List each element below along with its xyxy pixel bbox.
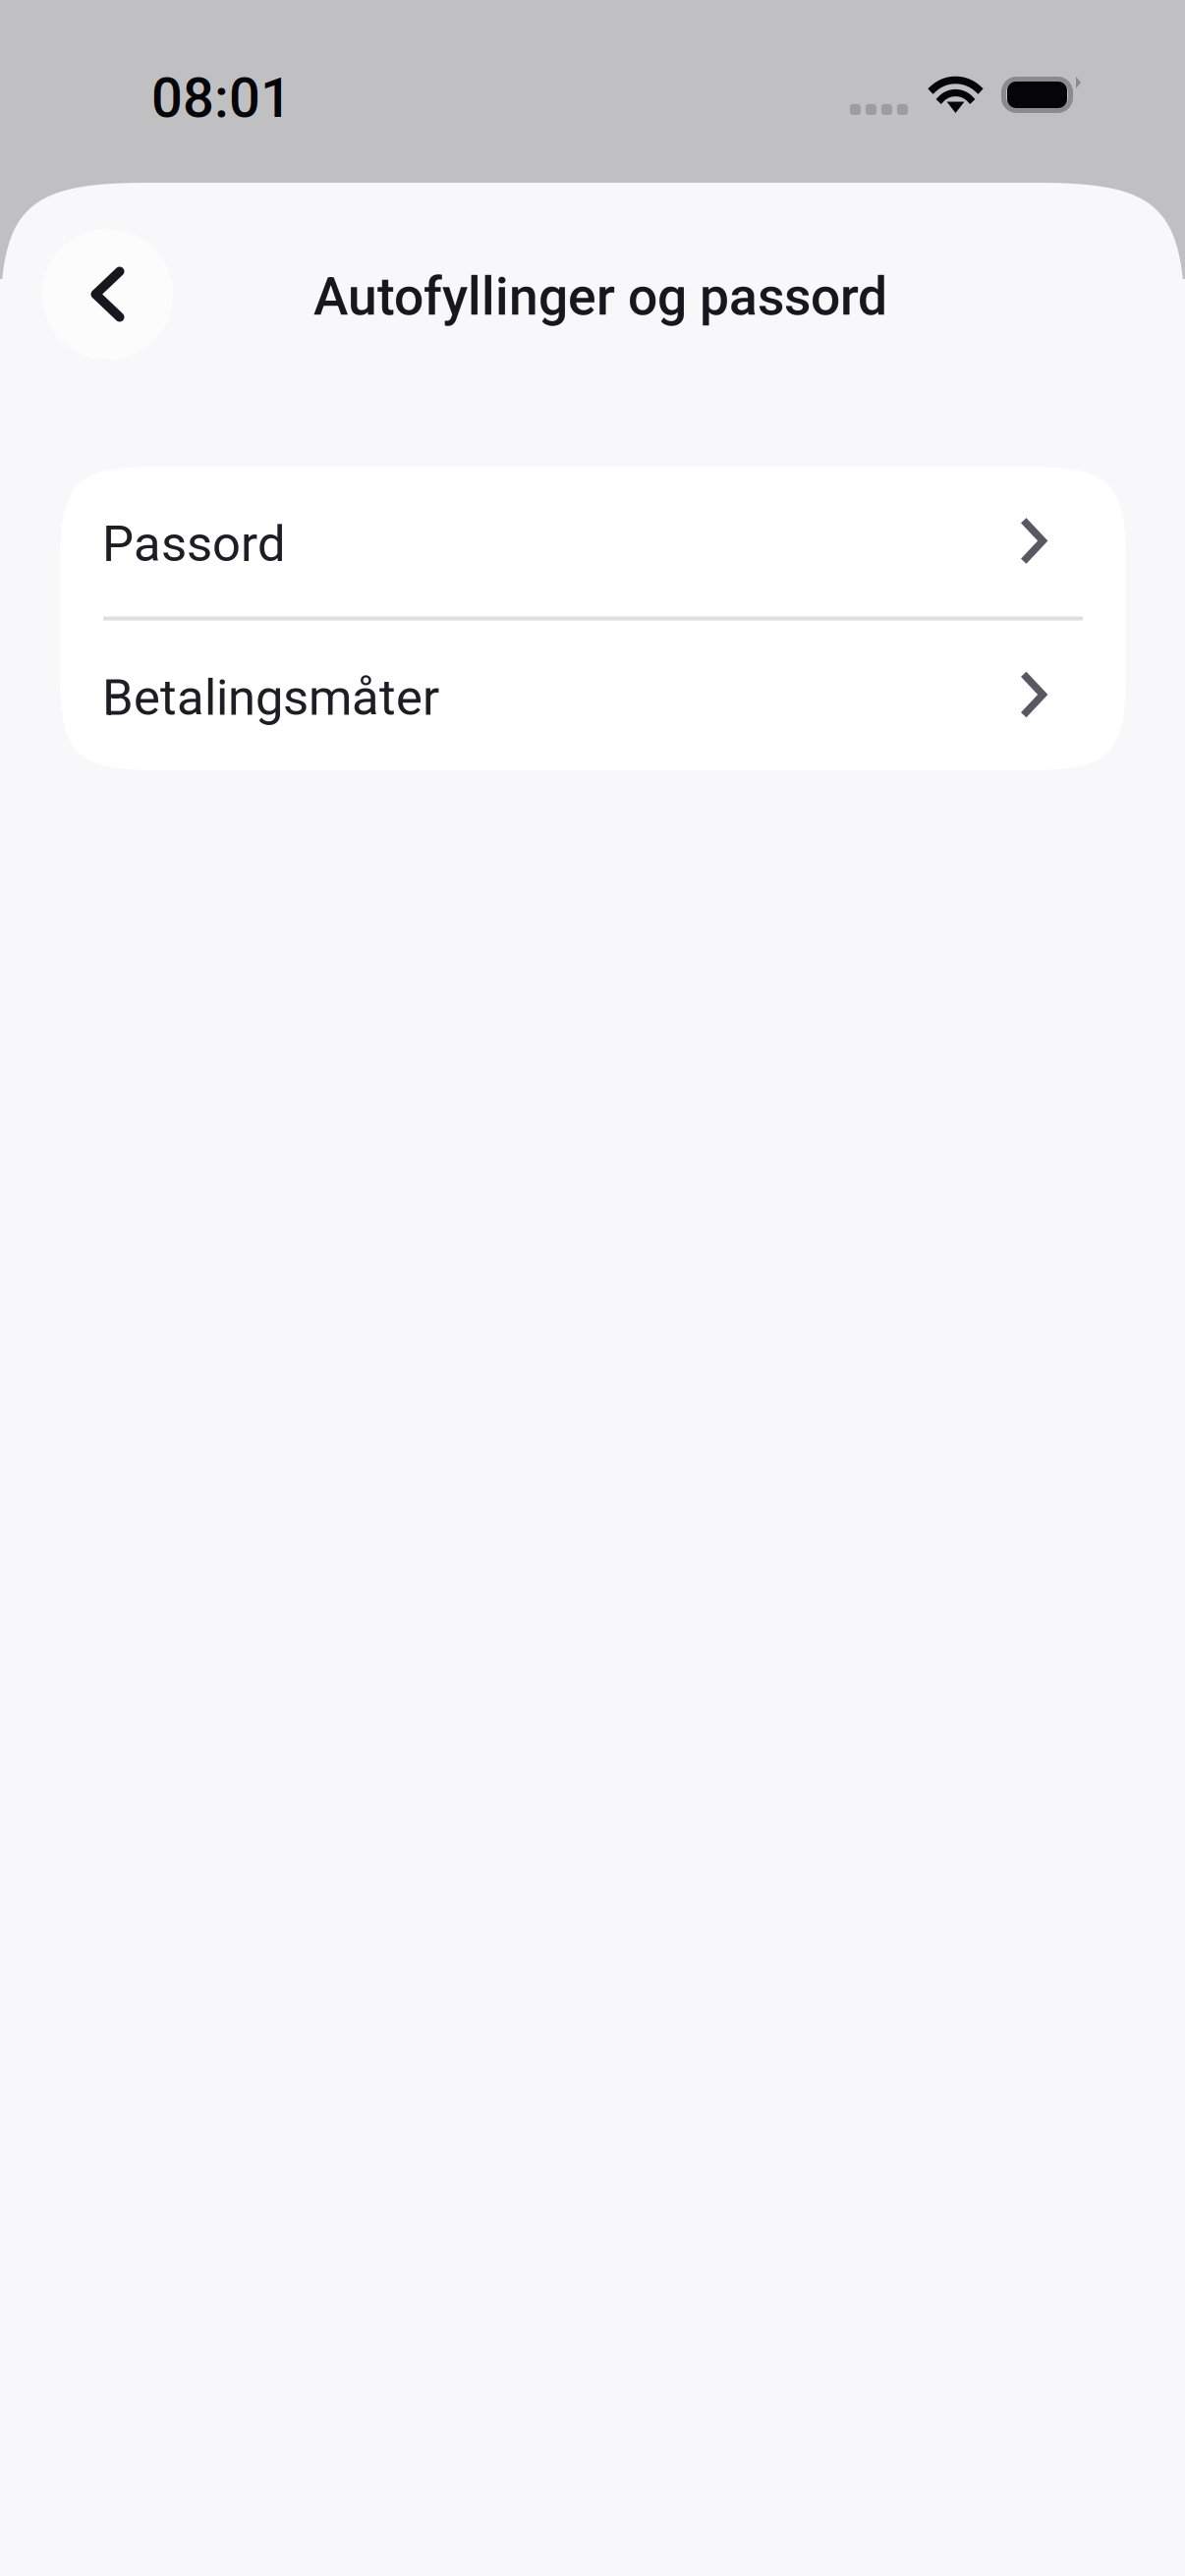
staticText: Passord: [102, 515, 286, 573]
staticText: Autofyllinger og passord: [313, 266, 887, 327]
staticText: 08:01: [151, 66, 292, 130]
staticText: Betalingsmåter: [102, 669, 439, 727]
button[interactable]: Passord: [60, 467, 1126, 616]
button[interactable]: Betalingsmåter: [60, 620, 1126, 770]
button[interactable]: Back: [42, 229, 173, 360]
